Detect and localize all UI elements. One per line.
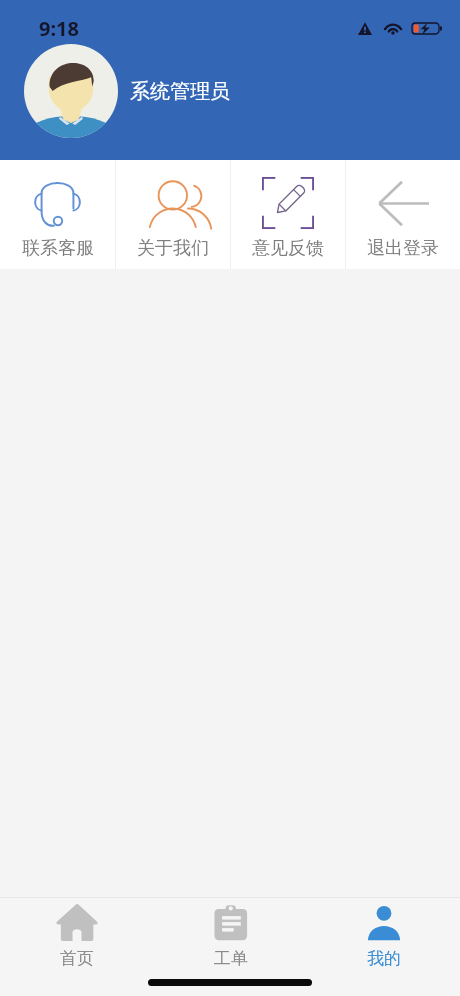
staticText: 系统管理员 xyxy=(130,79,230,104)
button[interactable]: 意见反馈 xyxy=(231,160,345,269)
staticText: 意见反馈 xyxy=(252,237,324,260)
button[interactable]: 系统管理员 xyxy=(0,44,460,138)
button[interactable]: 首页 xyxy=(0,898,154,973)
staticText: 联系客服 xyxy=(22,237,94,260)
staticText: 工单 xyxy=(214,948,248,969)
button[interactable]: 关于我们 xyxy=(116,160,230,269)
button[interactable]: 我的 xyxy=(307,898,460,973)
staticText: 关于我们 xyxy=(137,237,209,260)
staticText: 9:18 xyxy=(39,15,79,42)
staticText: 我的 xyxy=(367,948,401,969)
staticText: 首页 xyxy=(60,948,94,969)
button[interactable]: 退出登录 xyxy=(346,160,460,269)
button[interactable]: 工单 xyxy=(154,898,307,973)
button[interactable]: 联系客服 xyxy=(0,160,115,269)
staticText: 退出登录 xyxy=(367,237,439,260)
